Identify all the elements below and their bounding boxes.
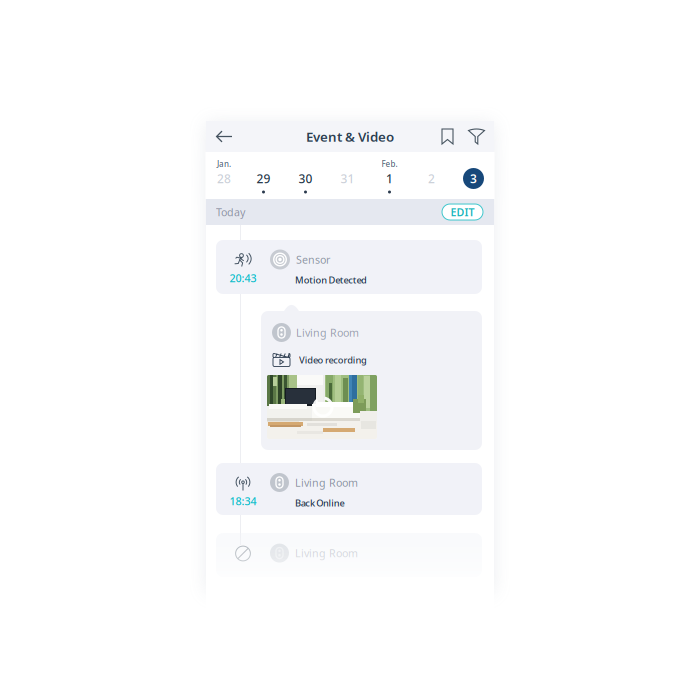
button[interactable]: EDIT bbox=[442, 204, 483, 220]
staticText: Sensor bbox=[296, 252, 330, 267]
staticText: Today bbox=[216, 205, 245, 219]
button[interactable]: 29 bbox=[242, 158, 284, 197]
button[interactable]: Jan. bbox=[205, 158, 242, 197]
staticText: 2 bbox=[428, 170, 435, 186]
staticText: Event & Video bbox=[306, 128, 394, 145]
button[interactable]: Bookmark bbox=[432, 121, 463, 152]
staticText: 29 bbox=[256, 170, 270, 186]
staticText: Jan. bbox=[217, 159, 231, 169]
button[interactable]: 30 bbox=[284, 158, 326, 197]
staticText: EDIT bbox=[450, 205, 474, 219]
staticText: 1 bbox=[386, 170, 393, 186]
staticText: Video recording bbox=[299, 354, 367, 366]
staticText: Feb. bbox=[381, 159, 397, 169]
staticText: Living Room bbox=[296, 325, 359, 340]
button[interactable]: Filter bbox=[463, 121, 490, 152]
button[interactable]: Back bbox=[211, 121, 237, 152]
staticText: 3 bbox=[470, 170, 477, 186]
staticText: Motion Detected bbox=[295, 274, 367, 286]
staticText: 30 bbox=[298, 170, 312, 186]
button[interactable]: Feb. bbox=[368, 158, 410, 197]
staticText: 20:43 bbox=[229, 271, 256, 285]
staticText: 18:34 bbox=[229, 494, 256, 508]
staticText: Back Online bbox=[295, 497, 344, 509]
staticText: Living Room bbox=[295, 546, 358, 560]
button[interactable]: 2 bbox=[410, 158, 452, 197]
button[interactable]: 3 bbox=[452, 158, 494, 197]
staticText: 31 bbox=[340, 170, 354, 186]
button[interactable]: 31 bbox=[326, 158, 368, 197]
staticText: Living Room bbox=[295, 475, 358, 490]
staticText: 28 bbox=[217, 170, 231, 186]
